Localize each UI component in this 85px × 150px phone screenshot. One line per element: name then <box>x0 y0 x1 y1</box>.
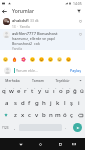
staticText: s <box>14 99 17 107</box>
button[interactable]: ş <box>68 97 75 109</box>
staticText: z <box>14 111 17 119</box>
button[interactable]: 0 <box>64 85 71 97</box>
button[interactable]: Emoji <box>1 55 10 64</box>
button[interactable]: Merhaba <box>0 76 25 85</box>
button[interactable]: 1 <box>0 85 8 97</box>
button[interactable]: z <box>11 109 19 121</box>
staticText: i <box>78 99 80 107</box>
staticText: 33 dk <box>30 18 39 23</box>
button[interactable]: Tamam <box>25 76 50 85</box>
staticText: ı <box>53 87 55 95</box>
button[interactable]: 4 <box>22 85 29 97</box>
button[interactable]: More suggestions <box>75 76 85 85</box>
staticText: 0 <box>69 87 71 90</box>
staticText: c <box>28 111 31 119</box>
button[interactable]: x <box>19 109 26 121</box>
button[interactable]: c <box>26 109 33 121</box>
button[interactable]: n <box>47 109 54 121</box>
staticText: Paylaş <box>70 68 81 73</box>
staticText: 8 <box>55 87 57 90</box>
button[interactable]: ü <box>78 85 85 97</box>
button[interactable]: 7 <box>43 85 50 97</box>
staticText: ş <box>70 99 73 107</box>
button[interactable]: Emoji <box>46 55 55 64</box>
staticText: y <box>38 87 42 95</box>
button[interactable]: Send <box>69 121 85 134</box>
staticText: t <box>31 87 34 95</box>
staticText: b <box>42 111 46 119</box>
button[interactable]: k <box>54 97 61 109</box>
staticText: , <box>14 125 16 131</box>
staticText: hazırsınız, ellerde ve yapıl <box>12 36 55 41</box>
staticText: ?123 <box>2 126 9 130</box>
staticText: x <box>21 111 25 119</box>
staticText: w <box>9 87 14 95</box>
staticText: ü <box>80 87 84 95</box>
button[interactable]: Emoji <box>55 55 64 64</box>
button[interactable]: l <box>61 97 68 109</box>
button[interactable]: Back <box>0 6 9 16</box>
button[interactable]: 8 <box>50 85 57 97</box>
button[interactable]: f <box>26 97 33 109</box>
staticText: n <box>49 111 53 119</box>
button[interactable]: Emoji <box>64 55 73 64</box>
button[interactable]: . <box>62 121 69 134</box>
button[interactable]: 2 <box>8 85 15 97</box>
button[interactable]: Back <box>15 139 26 150</box>
button[interactable]: g <box>33 97 40 109</box>
button[interactable]: Backspace <box>75 109 85 121</box>
staticText: f <box>28 99 31 107</box>
button[interactable]: b <box>40 109 47 121</box>
staticText: u <box>45 87 49 95</box>
button[interactable]: m <box>54 109 61 121</box>
button[interactable]: i <box>75 97 82 109</box>
staticText: 6 <box>41 87 43 90</box>
button[interactable]: j <box>47 97 54 109</box>
button[interactable]: d <box>19 97 26 109</box>
staticText: Tamam <box>32 78 44 83</box>
button[interactable]: Home <box>35 139 46 150</box>
staticText: m <box>55 111 61 119</box>
button[interactable]: Sort <box>74 6 84 16</box>
button[interactable]: Recents <box>55 139 66 150</box>
button[interactable]: Paylaş <box>68 65 83 76</box>
button[interactable]: ahakdsfl <box>0 16 85 29</box>
button[interactable]: aslifilen7777 Bonushost <box>0 29 85 50</box>
button[interactable]: 3 <box>15 85 22 97</box>
staticText: p <box>66 87 70 95</box>
button[interactable]: Shift <box>0 109 11 121</box>
button[interactable]: h <box>40 97 47 109</box>
button[interactable]: Like <box>77 18 83 24</box>
staticText: ahakdsfl <box>12 18 29 23</box>
button[interactable]: s <box>11 97 19 109</box>
button[interactable]: 9 <box>57 85 64 97</box>
staticText: Teşekkür <box>55 78 70 83</box>
staticText: Merhaba <box>5 78 20 83</box>
button[interactable]: Teşekkür <box>50 76 75 85</box>
button[interactable]: v <box>33 109 40 121</box>
button[interactable]: Emoji <box>37 55 46 64</box>
staticText: ö <box>63 111 67 119</box>
staticText: j <box>50 99 52 107</box>
button[interactable]: ç <box>68 109 75 121</box>
staticText: 3 <box>20 87 22 90</box>
staticText: e <box>17 87 21 95</box>
button[interactable]: Hide keyboard <box>69 139 79 150</box>
staticText: 4 <box>27 87 29 90</box>
button[interactable]: , <box>11 121 19 134</box>
button[interactable]: 5 <box>29 85 36 97</box>
button[interactable]: a <box>3 97 11 109</box>
button[interactable]: Emoji <box>10 55 19 64</box>
staticText: 2 <box>13 87 15 90</box>
staticText: 9 <box>62 87 64 90</box>
button[interactable]: ğ <box>71 85 78 97</box>
button[interactable]: Like <box>77 31 83 37</box>
button[interactable]: 6 <box>36 85 43 97</box>
button[interactable]: Emoji <box>28 55 37 64</box>
button[interactable]: Emoji <box>19 55 28 64</box>
button[interactable]: ?123 <box>0 121 11 134</box>
button[interactable]: ö <box>61 109 68 121</box>
staticText: h <box>42 99 46 107</box>
staticText: q <box>2 87 6 95</box>
